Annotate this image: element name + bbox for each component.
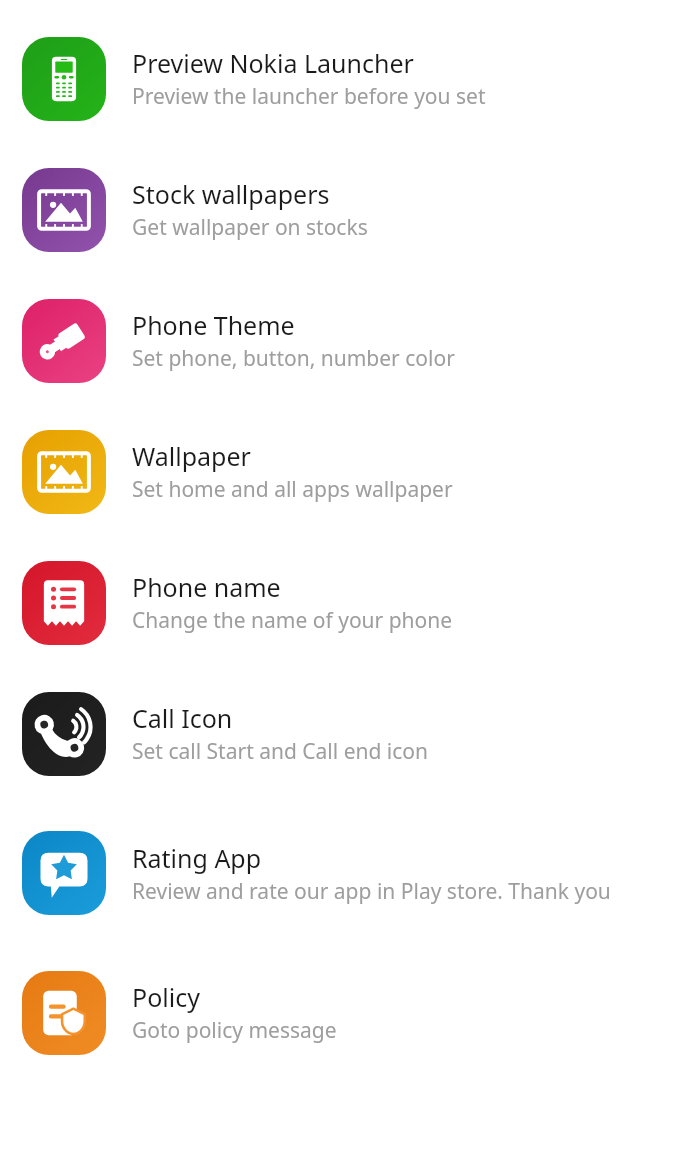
staticText: Phone Theme	[132, 308, 295, 342]
button[interactable]: Wallpaper	[0, 406, 682, 537]
staticText: Set phone, button, number color	[132, 344, 455, 373]
staticText: Preview the launcher before you set	[132, 82, 486, 111]
button[interactable]: Phone Theme	[0, 275, 682, 406]
button[interactable]: Rating App	[0, 799, 682, 947]
staticText: Wallpaper	[132, 439, 251, 473]
staticText: Get wallpaper on stocks	[132, 213, 368, 242]
button[interactable]: Policy	[0, 947, 682, 1078]
staticText: Set home and all apps wallpaper	[132, 475, 453, 504]
staticText: Policy	[132, 980, 200, 1014]
staticText: Call Icon	[132, 701, 233, 735]
staticText: Stock wallpapers	[132, 177, 330, 211]
staticText: Phone name	[132, 570, 281, 604]
button[interactable]: Stock wallpapers	[0, 144, 682, 275]
staticText: Goto policy message	[132, 1016, 337, 1045]
staticText: Rating App	[132, 841, 262, 875]
staticText: Preview Nokia Launcher	[132, 46, 414, 80]
staticText: Set call Start and Call end icon	[132, 737, 429, 766]
staticText: Change the name of your phone	[132, 606, 453, 635]
button[interactable]: Preview Nokia Launcher	[0, 13, 682, 144]
button[interactable]: Call Icon	[0, 668, 682, 799]
staticText: Review and rate our app in Play store. T…	[132, 877, 611, 906]
button[interactable]: Phone name	[0, 537, 682, 668]
